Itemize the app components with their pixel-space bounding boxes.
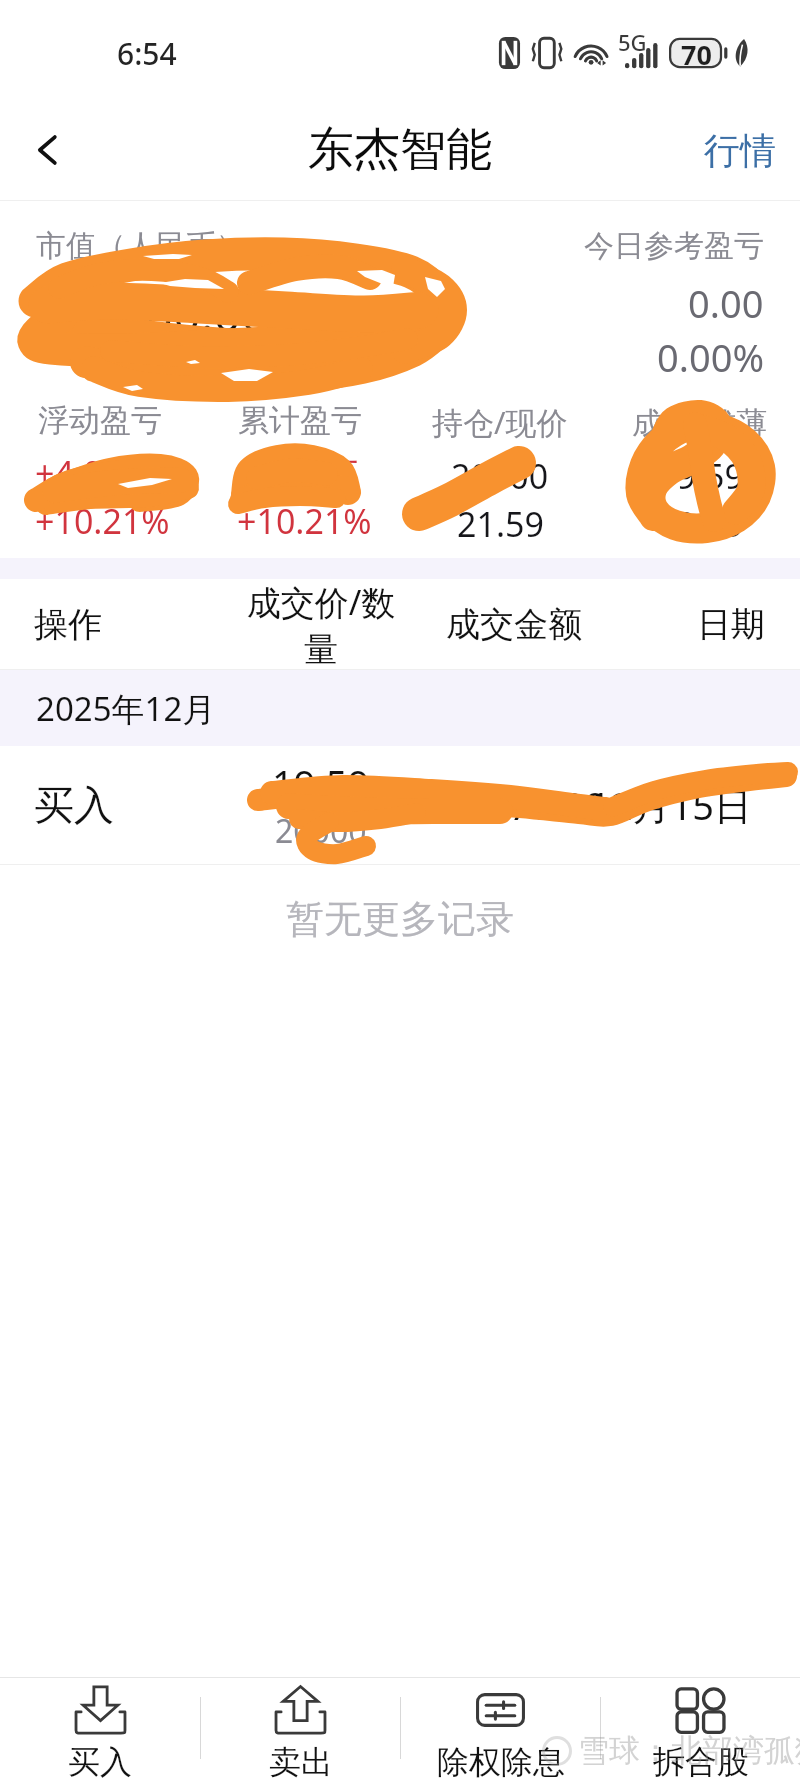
staticText: 买入 (34, 780, 114, 830)
staticText: 买入 (68, 1742, 132, 1778)
staticText: 20000 (451, 453, 549, 499)
staticText: 卖出 (269, 1742, 333, 1778)
staticText: 21.59 (457, 501, 544, 547)
button[interactable]: 买入 (0, 1678, 200, 1778)
staticText: 持仓/现价 (432, 401, 568, 443)
staticText: 12月15日 (589, 779, 752, 831)
staticText: 5G (618, 27, 647, 57)
staticText: 6:54 (117, 33, 177, 74)
staticText: 19.59 (272, 757, 370, 809)
button[interactable]: Back (14, 116, 82, 184)
staticText: 行情 (704, 128, 776, 173)
staticText: +10.21% (35, 498, 170, 544)
staticText: 雪球：北部湾孤狼 (578, 1731, 800, 1770)
staticText: 今日参考盈亏 (584, 227, 764, 265)
staticText: +4.00万 (237, 450, 358, 496)
staticText: 0.00 (688, 277, 764, 329)
button[interactable]: 卖出 (201, 1678, 400, 1778)
staticText: +10.21% (237, 498, 372, 544)
staticText: 70 (681, 36, 712, 73)
staticText: 20000 (275, 809, 367, 853)
staticText: 操作 (34, 603, 102, 646)
staticText: 累计盈亏 (238, 401, 362, 440)
staticText: 0.00% (657, 331, 764, 383)
staticText: 浮动盈亏 (38, 401, 162, 440)
staticText: 19.59 (657, 501, 744, 547)
staticText: 拆合股 (653, 1742, 749, 1778)
staticText: 暂无更多记录 (286, 895, 514, 943)
staticText: 除权除息 (437, 1742, 565, 1778)
staticText: 东杰智能 (308, 121, 492, 179)
staticText: +4.00万 (35, 450, 156, 496)
staticText: 成交金额 (446, 603, 582, 646)
staticText: 100070.00 (422, 779, 607, 831)
button[interactable]: 除权除息 (401, 1678, 600, 1778)
staticText: 431800.00 (36, 281, 269, 346)
button[interactable]: 拆合股 (601, 1678, 800, 1778)
staticText: 市值（人民币） (36, 227, 246, 265)
button[interactable]: 行情 (684, 114, 800, 187)
staticText: 成交价/数量 (242, 579, 400, 669)
staticText: 19.59 (657, 453, 744, 499)
button[interactable]: 买入 (0, 746, 800, 864)
staticText: 成本/摊薄 (632, 401, 768, 443)
staticText: 2025年12月 (36, 686, 216, 731)
staticText: 日期 (697, 603, 765, 646)
